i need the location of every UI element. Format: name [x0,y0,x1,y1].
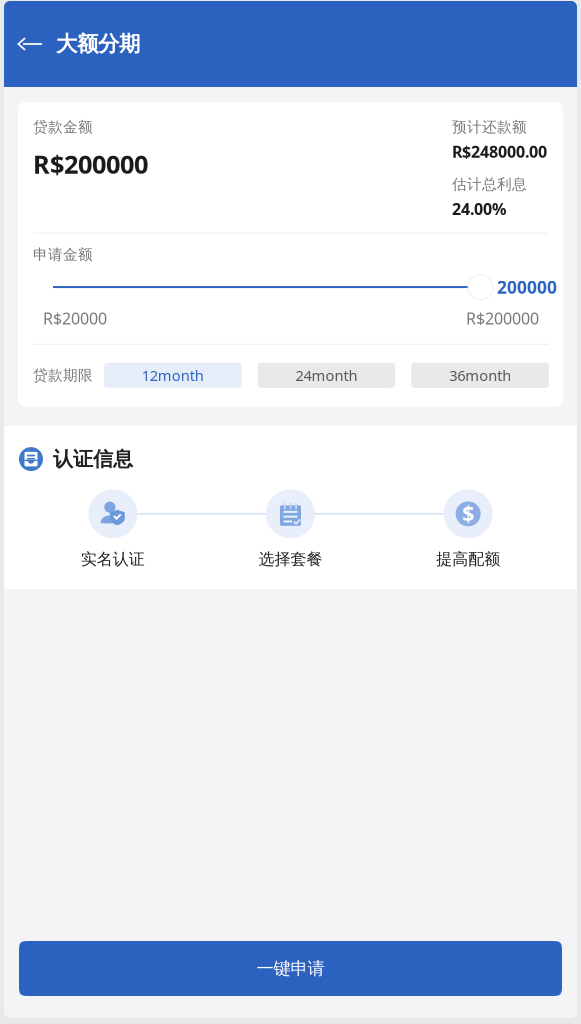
staticText: 选择套餐 [258,549,322,569]
button[interactable]: 12month [104,363,242,388]
staticText: 200000 [497,275,557,298]
staticText: 预计还款额 [452,118,527,136]
staticText: 12month [142,366,204,385]
staticText: 申请金额 [33,245,93,263]
staticText: 认证信息 [53,447,133,471]
staticText: 估计总利息 [452,175,527,193]
staticText: 24.00% [452,198,506,219]
staticText: R$20000 [43,307,107,329]
staticText: $ [462,499,474,527]
button[interactable]: Back [17,22,57,66]
staticText: R$248000.00 [452,141,547,162]
staticText: 实名认证 [81,549,145,569]
staticText: R$200000 [466,307,539,329]
button[interactable]: 一键申请 [19,941,562,996]
staticText: 大额分期 [56,31,140,57]
staticText: 一键申请 [256,958,324,979]
staticText: R$200000 [33,147,148,181]
staticText: 贷款金额 [33,118,93,136]
staticText: 36month [449,366,511,385]
staticText: 贷款期限 [33,366,93,384]
staticText: 提高配额 [436,549,500,569]
staticText: 24month [295,366,357,385]
button[interactable]: 36month [411,363,549,388]
button[interactable]: 24month [258,363,395,388]
